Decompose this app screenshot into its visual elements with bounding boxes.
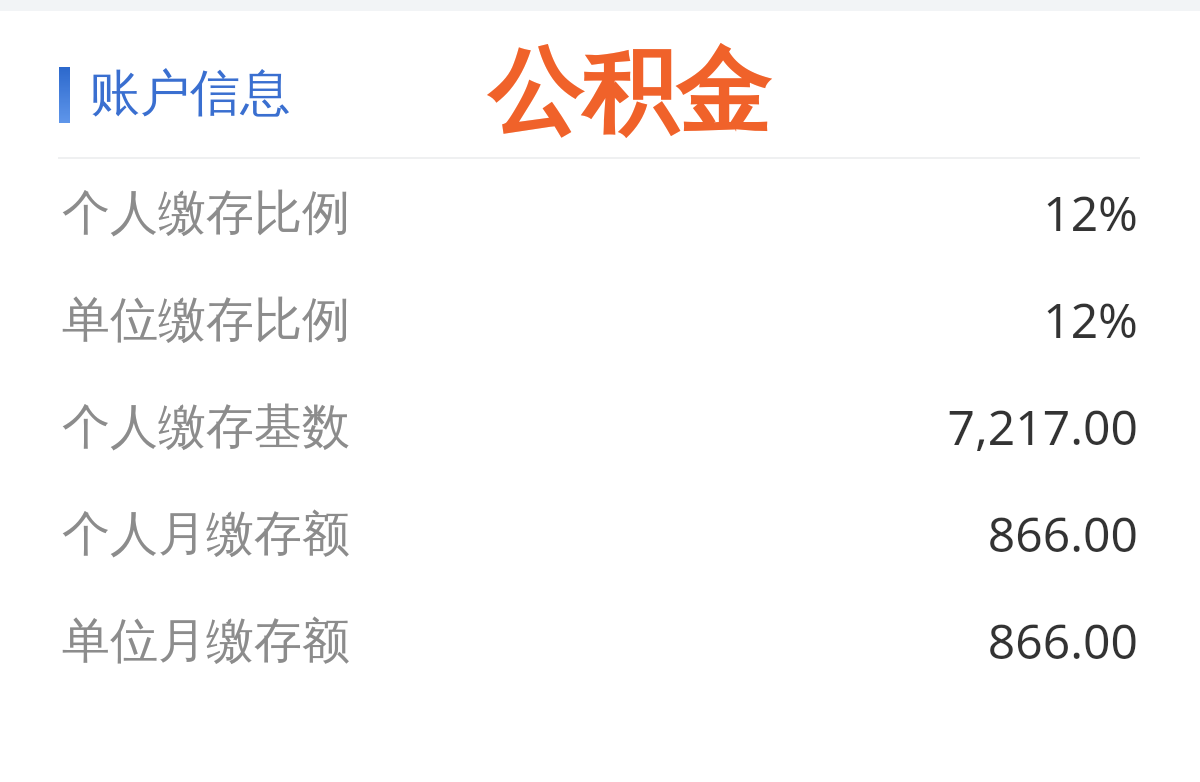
staticText: 公积金	[488, 33, 770, 151]
staticText: 866.00	[987, 608, 1138, 673]
button[interactable]: 个人缴存基数	[0, 373, 1200, 480]
staticText: 单位缴存比例	[62, 290, 350, 350]
staticText: 866.00	[987, 501, 1138, 566]
button[interactable]: 单位缴存比例	[0, 266, 1200, 373]
button[interactable]: 个人月缴存额	[0, 480, 1200, 587]
button[interactable]: 单位月缴存额	[0, 587, 1200, 694]
staticText: 个人缴存比例	[62, 183, 350, 243]
staticText: 账户信息	[90, 62, 290, 125]
button[interactable]: 账户信息	[88, 62, 292, 125]
staticText: 12%	[1043, 180, 1138, 245]
staticText: 个人月缴存额	[62, 504, 350, 564]
staticText: 个人缴存基数	[62, 397, 350, 457]
staticText: 单位月缴存额	[62, 611, 350, 671]
staticText: 7,217.00	[947, 394, 1138, 459]
staticText: 12%	[1043, 287, 1138, 352]
button[interactable]: 个人缴存比例	[0, 159, 1200, 266]
button[interactable]: 公积金	[488, 33, 770, 151]
